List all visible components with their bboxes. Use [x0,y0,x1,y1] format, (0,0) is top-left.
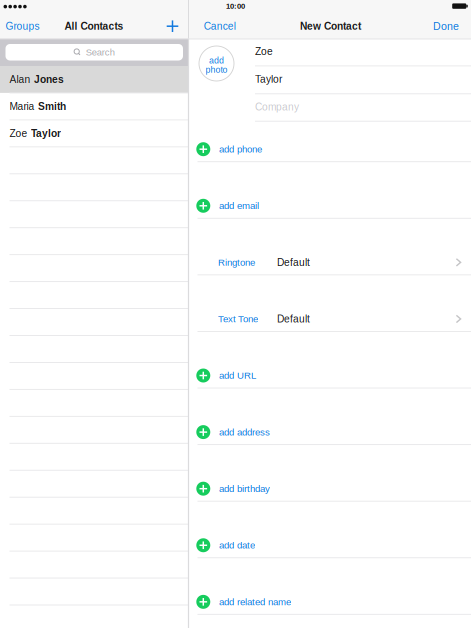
staticText: Zoe [9,128,27,139]
staticText: Ringtone [218,257,255,268]
staticText: add related name [219,596,291,607]
staticText: add URL [219,370,256,381]
staticText: Default [277,313,310,325]
button[interactable]: Add photo [198,45,235,82]
staticText: Cancel [204,20,236,32]
staticText: add email [219,200,259,211]
staticText: Jones [34,74,64,85]
button[interactable]: add address [188,418,471,446]
staticText: Alan [9,74,30,85]
button[interactable]: Zoe [0,120,188,147]
button[interactable]: Groups [0,14,45,38]
staticText: add date [219,540,255,551]
staticText: New Contact [300,20,361,32]
staticText: add address [219,427,270,437]
staticText: All Contacts [64,20,123,32]
button[interactable]: Cancel [198,14,242,38]
button[interactable]: add phone [188,135,471,163]
button[interactable]: Zoe [255,38,471,65]
staticText: add [209,55,224,65]
staticText: Search [86,47,115,57]
staticText: Zoe [255,46,273,57]
staticText: Done [433,20,459,32]
staticText: Maria [9,101,34,112]
button[interactable]: add email [188,192,471,220]
button[interactable]: Add contact [160,14,184,38]
button[interactable]: Ringtone [188,248,471,276]
staticText: add birthday [219,483,270,494]
staticText: add phone [219,144,262,154]
button[interactable]: Text Tone [188,305,471,333]
button[interactable]: Company [255,93,471,121]
staticText: Taylor [31,128,61,139]
staticText: Smith [38,101,66,112]
button[interactable]: add related name [188,588,471,616]
staticText: Default [277,257,310,268]
staticText: Company [255,101,299,113]
staticText: 10:00 [226,2,245,10]
button[interactable]: Alan [0,66,188,93]
staticText: Groups [5,20,39,32]
button[interactable]: add birthday [188,475,471,503]
button[interactable]: Taylor [255,65,471,93]
staticText: photo [205,65,227,75]
staticText: Taylor [255,74,282,85]
button[interactable]: Search [5,44,183,60]
button[interactable]: Maria [0,93,188,120]
staticText: Text Tone [218,314,258,324]
button[interactable]: add URL [188,361,471,389]
button[interactable]: Done [427,14,465,38]
button[interactable]: add date [188,531,471,559]
